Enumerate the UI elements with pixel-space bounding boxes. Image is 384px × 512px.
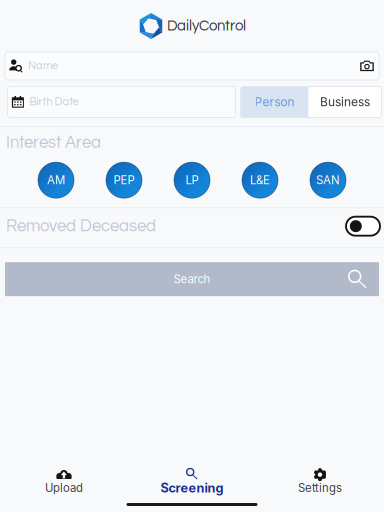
button[interactable]: Screening: [128, 468, 256, 496]
button[interactable]: PEP: [90, 162, 158, 198]
staticText: L&E: [250, 173, 270, 187]
staticText: Search: [173, 272, 210, 286]
staticText: Birth Date: [29, 96, 78, 108]
staticText: Screening: [160, 480, 223, 496]
button[interactable]: LP: [158, 162, 226, 198]
staticText: LP: [185, 173, 198, 187]
button[interactable]: SAN: [294, 162, 362, 198]
button[interactable]: Search: [5, 262, 379, 296]
staticText: Upload: [45, 481, 83, 495]
staticText: AM: [47, 173, 65, 187]
staticText: PEP: [113, 173, 134, 187]
staticText: Name: [28, 60, 58, 72]
button[interactable]: Scan ID photo: [360, 60, 374, 71]
button[interactable]: Upload: [0, 468, 128, 496]
staticText: DailyControl: [167, 18, 246, 34]
staticText: Settings: [298, 481, 342, 495]
button[interactable]: Person: [240, 86, 308, 117]
staticText: Business: [320, 95, 370, 109]
staticText: Interest Area: [6, 134, 101, 151]
staticText: SAN: [316, 173, 340, 187]
button[interactable]: L&E: [226, 162, 294, 198]
staticText: Person: [254, 95, 294, 109]
button[interactable]: Settings: [256, 468, 384, 496]
staticText: Removed Deceased: [6, 218, 156, 235]
button[interactable]: Business: [308, 86, 381, 117]
button[interactable]: Removed Deceased: [346, 215, 380, 237]
button[interactable]: AM: [22, 162, 90, 198]
